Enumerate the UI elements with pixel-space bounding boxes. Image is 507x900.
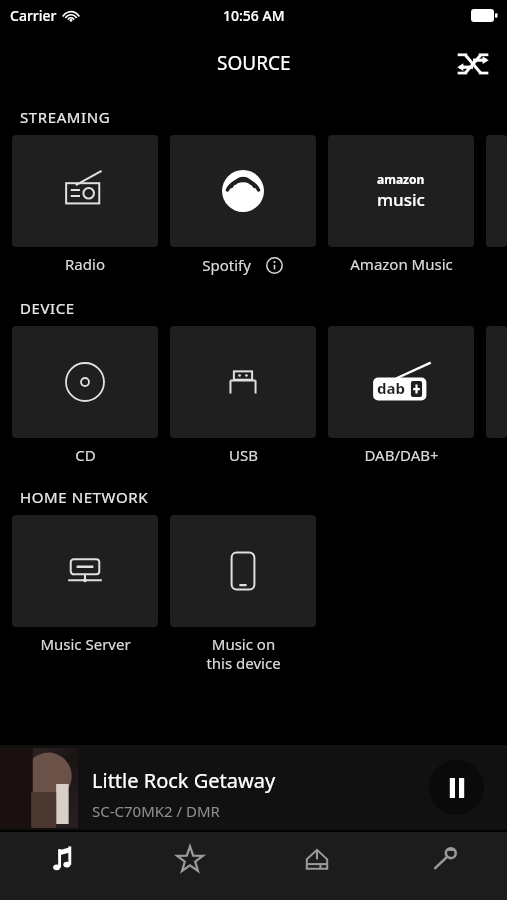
staticText: Radio	[65, 254, 105, 274]
staticText: 10:56 AM	[223, 6, 285, 25]
button[interactable]: CD	[12, 326, 158, 438]
button[interactable]: Spotify	[170, 135, 316, 247]
staticText: Carrier	[10, 6, 57, 25]
staticText: CD	[75, 445, 96, 465]
button[interactable]: Music	[0, 832, 126, 900]
button[interactable]: Pause	[429, 760, 484, 815]
button[interactable]: Amazon Music	[328, 135, 474, 247]
staticText: USB	[229, 445, 258, 465]
staticText: SC-C70MK2 / DMR	[92, 801, 220, 821]
staticText: DAB/DAB+	[364, 445, 439, 465]
button[interactable]: Settings	[380, 832, 507, 900]
staticText: Little Rock Getaway	[92, 767, 276, 794]
staticText: Amazon Music	[350, 254, 453, 274]
staticText: DEVICE	[20, 298, 75, 318]
button[interactable]: Spotify info	[263, 254, 285, 276]
button[interactable]: Source settings	[447, 38, 499, 90]
staticText: SOURCE	[217, 50, 291, 76]
staticText: dab	[377, 378, 405, 398]
button[interactable]: USB	[170, 326, 316, 438]
staticText: Spotify	[202, 255, 251, 275]
button[interactable]: Radio	[12, 135, 158, 247]
button[interactable]: Music Server	[12, 515, 158, 627]
staticText: STREAMING	[20, 107, 111, 127]
button[interactable]: DAB/DAB+	[328, 326, 474, 438]
staticText: amazon	[377, 171, 425, 187]
staticText: Music Server	[40, 634, 131, 654]
button[interactable]: Home	[253, 832, 380, 900]
button[interactable]: Favorites	[126, 832, 253, 900]
staticText: Music on this device	[206, 634, 281, 673]
staticText: HOME NETWORK	[20, 487, 149, 507]
button[interactable]: Music on this device	[170, 515, 316, 627]
button[interactable]: Little Rock Getaway	[0, 745, 507, 830]
staticText: music	[377, 188, 425, 211]
